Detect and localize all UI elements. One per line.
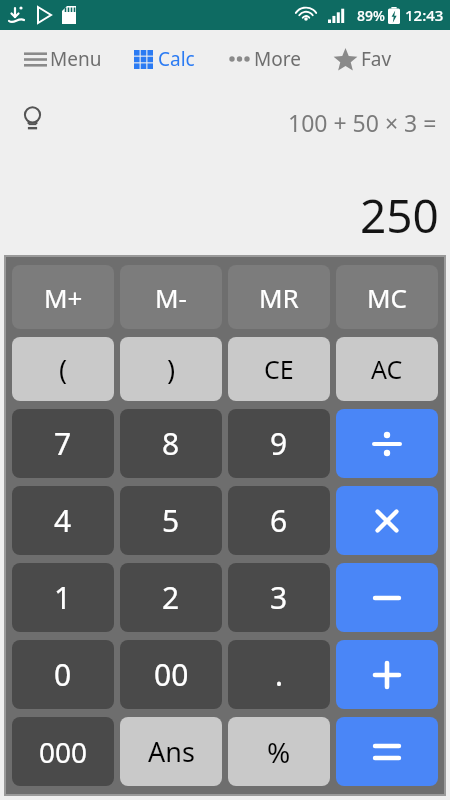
button[interactable]: )	[120, 337, 222, 401]
staticText: Ans	[148, 733, 195, 770]
staticText: MC	[367, 280, 408, 315]
staticText: 9	[270, 423, 288, 464]
staticText: 2	[162, 577, 180, 618]
button[interactable]: 8	[120, 409, 222, 478]
button[interactable]: 4	[12, 486, 114, 555]
staticText: )	[167, 351, 176, 388]
staticText: 3	[270, 577, 288, 618]
button[interactable]: CE	[228, 337, 330, 401]
staticText: 00	[154, 654, 189, 695]
staticText: 7	[54, 423, 72, 464]
button[interactable]: 9	[228, 409, 330, 478]
staticText: .	[275, 654, 284, 695]
staticText: M+	[44, 280, 83, 315]
staticText: 89%	[357, 6, 385, 25]
button[interactable]: MR	[228, 265, 330, 329]
button[interactable]: 7	[12, 409, 114, 478]
button[interactable]: M-	[120, 265, 222, 329]
button[interactable]: 6	[228, 486, 330, 555]
button[interactable]: .	[228, 640, 330, 709]
button[interactable]: 3	[228, 563, 330, 632]
button[interactable]: 00	[120, 640, 222, 709]
staticText: Calc	[158, 46, 195, 72]
staticText: 12:43	[405, 5, 444, 25]
staticText: 100 + 50 × 3 =	[288, 107, 437, 138]
button[interactable]: 000	[12, 717, 114, 786]
staticText: 000	[39, 733, 88, 771]
staticText: %	[267, 733, 291, 771]
button[interactable]: Menu	[0, 38, 110, 80]
button[interactable]: M+	[12, 265, 114, 329]
button[interactable]: 2	[120, 563, 222, 632]
button[interactable]: 0	[12, 640, 114, 709]
button[interactable]: Ans	[120, 717, 222, 786]
button[interactable]: Add	[336, 640, 438, 709]
button[interactable]: %	[228, 717, 330, 786]
staticText: 6	[270, 500, 288, 541]
button[interactable]: 1	[12, 563, 114, 632]
staticText: Menu	[50, 46, 102, 72]
button[interactable]: AC	[336, 337, 438, 401]
staticText: More	[254, 46, 301, 72]
staticText: (	[59, 351, 68, 388]
button[interactable]: Equals	[336, 717, 438, 786]
button[interactable]: MC	[336, 265, 438, 329]
staticText: M-	[155, 280, 187, 315]
button[interactable]: Hint	[14, 100, 50, 136]
staticText: AC	[371, 352, 403, 386]
staticText: Fav	[361, 46, 392, 72]
staticText: 8	[162, 423, 180, 464]
staticText: 4	[54, 500, 72, 541]
button[interactable]: Subtract	[336, 563, 438, 632]
button[interactable]: (	[12, 337, 114, 401]
button[interactable]: Fav	[325, 38, 400, 80]
staticText: 0	[54, 654, 72, 695]
staticText: 1	[54, 577, 72, 618]
button[interactable]: Divide	[336, 409, 438, 478]
staticText: CE	[264, 352, 294, 386]
button[interactable]: Calc	[126, 38, 203, 80]
staticText: 250	[360, 184, 439, 247]
staticText: MR	[259, 280, 299, 315]
staticText: 5	[162, 500, 180, 541]
button[interactable]: 5	[120, 486, 222, 555]
button[interactable]: More	[221, 38, 309, 80]
button[interactable]: Multiply	[336, 486, 438, 555]
